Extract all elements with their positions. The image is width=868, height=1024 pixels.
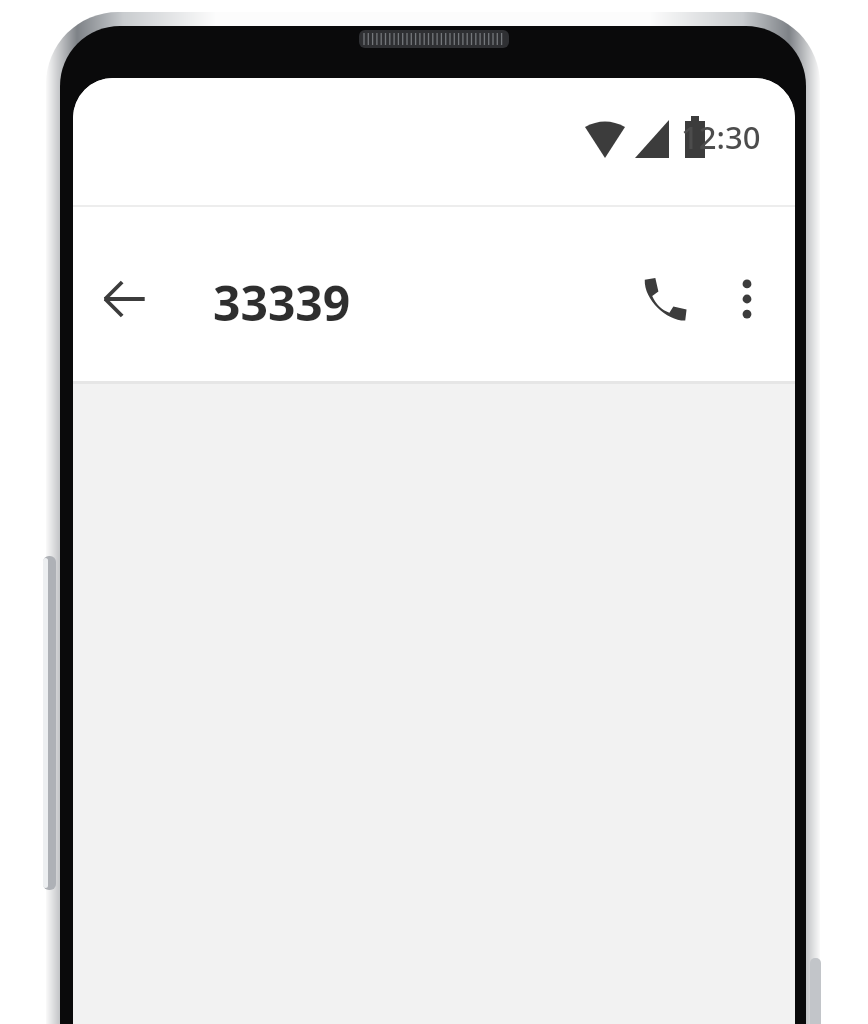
button[interactable]: Back [88,263,160,335]
button[interactable]: 33339 [213,270,351,335]
button[interactable]: Call [629,263,701,335]
staticText: 12:30 [681,116,761,158]
button[interactable]: More options [711,263,783,335]
